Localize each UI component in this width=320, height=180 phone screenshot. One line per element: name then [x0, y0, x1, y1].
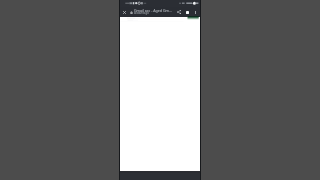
button[interactable]: Share — [175, 7, 182, 17]
staticText: accounts.go — [134, 11, 149, 15]
staticText: Gmail acc - Aged Gm… — [134, 8, 172, 13]
button[interactable]: More options — [192, 7, 198, 17]
button[interactable]: Close — [120, 7, 128, 17]
button[interactable]: Stop loading — [184, 7, 191, 17]
button[interactable]: Gmail acc - Aged Gm… — [130, 7, 178, 17]
